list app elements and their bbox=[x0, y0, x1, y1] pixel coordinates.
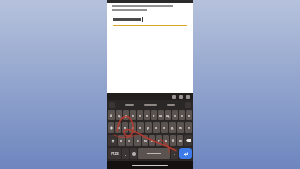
button[interactable]: , bbox=[122, 148, 129, 159]
button[interactable]: Voice input bbox=[186, 95, 190, 99]
staticText: н bbox=[146, 113, 149, 118]
button[interactable]: ф bbox=[108, 122, 114, 133]
button[interactable]: б bbox=[170, 135, 176, 146]
button[interactable]: я bbox=[118, 135, 125, 146]
button[interactable]: п bbox=[137, 122, 144, 133]
button[interactable]: ч bbox=[126, 135, 133, 146]
staticText: п bbox=[139, 125, 142, 130]
button[interactable]: с bbox=[134, 135, 141, 146]
button[interactable]: ы bbox=[115, 122, 121, 133]
button[interactable]: у bbox=[123, 110, 129, 120]
staticText: с bbox=[137, 138, 139, 143]
button[interactable]: Backspace bbox=[184, 135, 192, 146]
staticText: ъ bbox=[188, 113, 191, 118]
button[interactable]: л bbox=[161, 122, 168, 133]
staticText: э bbox=[188, 125, 190, 130]
staticText: ф bbox=[110, 125, 113, 130]
button[interactable]: Suggestion bbox=[144, 104, 157, 106]
button[interactable]: в bbox=[122, 122, 128, 133]
staticText: ы bbox=[117, 125, 120, 130]
staticText: х bbox=[181, 113, 183, 118]
staticText: м bbox=[144, 138, 147, 143]
button[interactable]: ж bbox=[177, 122, 184, 133]
staticText: л bbox=[163, 125, 166, 130]
staticText: б bbox=[172, 138, 175, 143]
button[interactable]: ъ bbox=[186, 110, 192, 120]
staticText: щ bbox=[166, 113, 170, 118]
button[interactable]: т bbox=[156, 135, 162, 146]
button[interactable]: щ bbox=[165, 110, 171, 120]
button[interactable]: о bbox=[153, 122, 160, 133]
button[interactable]: э bbox=[185, 122, 192, 133]
button[interactable]: Language bbox=[130, 148, 137, 159]
button[interactable]: ?123 bbox=[108, 148, 121, 159]
staticText: в bbox=[124, 125, 126, 130]
staticText: у bbox=[125, 113, 127, 118]
button[interactable]: Translate bbox=[172, 95, 176, 99]
button[interactable]: й bbox=[108, 110, 115, 120]
staticText: к bbox=[132, 113, 134, 118]
button[interactable]: д bbox=[169, 122, 176, 133]
button[interactable]: з bbox=[172, 110, 178, 120]
button[interactable]: ц bbox=[116, 110, 122, 120]
staticText: г bbox=[153, 113, 155, 118]
button[interactable]: и bbox=[149, 135, 155, 146]
button[interactable]: Suggestion bbox=[167, 104, 175, 106]
button[interactable]: н bbox=[144, 110, 150, 120]
staticText: я bbox=[120, 138, 123, 143]
button[interactable]: р bbox=[145, 122, 152, 133]
staticText: ш bbox=[159, 113, 163, 118]
button[interactable]: г bbox=[151, 110, 157, 120]
staticText: и bbox=[151, 138, 154, 143]
button[interactable]: . bbox=[171, 148, 178, 159]
staticText: ч bbox=[128, 138, 131, 143]
button[interactable]: Space bbox=[138, 148, 170, 159]
staticText: ?123 bbox=[111, 151, 119, 156]
staticText: т bbox=[158, 138, 160, 143]
staticText: з bbox=[174, 113, 176, 118]
staticText: д bbox=[171, 125, 174, 130]
button[interactable]: ь bbox=[163, 135, 169, 146]
button[interactable]: а bbox=[129, 122, 136, 133]
staticText: ж bbox=[179, 125, 182, 130]
button[interactable]: ш bbox=[158, 110, 164, 120]
button[interactable]: м bbox=[142, 135, 148, 146]
staticText: й bbox=[110, 113, 113, 118]
button[interactable]: х bbox=[179, 110, 185, 120]
button[interactable]: Shift bbox=[108, 135, 117, 146]
button[interactable]: Clipboard bbox=[179, 95, 183, 99]
staticText: а bbox=[132, 125, 134, 130]
button[interactable]: е bbox=[137, 110, 143, 120]
button[interactable]: к bbox=[130, 110, 136, 120]
staticText: ю bbox=[179, 138, 182, 143]
staticText: е bbox=[139, 113, 141, 118]
button[interactable]: ю bbox=[177, 135, 183, 146]
button[interactable]: Suggestion bbox=[125, 104, 134, 106]
button[interactable]: Enter bbox=[179, 148, 192, 159]
staticText: р bbox=[147, 125, 150, 130]
staticText: ц bbox=[118, 113, 121, 118]
staticText: . bbox=[174, 151, 175, 156]
staticText: , bbox=[125, 151, 126, 156]
staticText: ь bbox=[165, 138, 167, 143]
staticText: о bbox=[155, 125, 158, 130]
